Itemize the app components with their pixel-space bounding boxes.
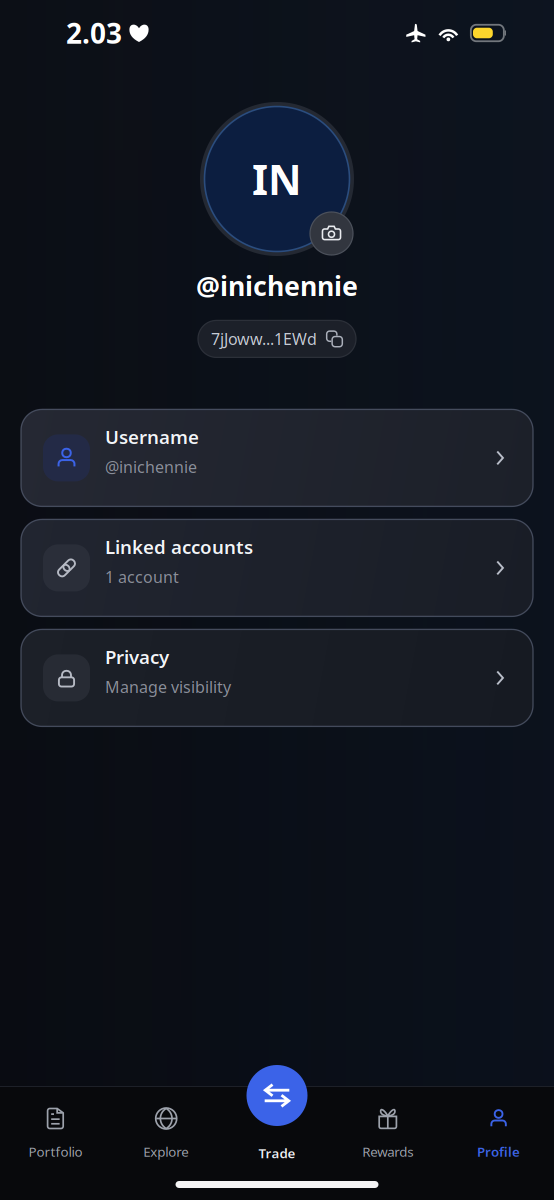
staticText: 7jJoww...1EWd [211, 328, 317, 349]
button[interactable]: Linked accounts [21, 519, 533, 616]
button[interactable]: Privacy [21, 629, 533, 726]
button[interactable]: Profile [443, 1087, 554, 1161]
staticText: 2.03 [66, 14, 122, 52]
staticText: Trade [258, 1144, 295, 1162]
button[interactable]: Copy wallet address 7jJoww...1EWd [198, 320, 356, 357]
staticText: Explore [143, 1143, 189, 1160]
staticText: Linked accounts [105, 534, 253, 559]
staticText: IN [252, 152, 302, 206]
staticText: 1 account [105, 566, 179, 587]
staticText: @inichennie [105, 456, 197, 477]
staticText: Profile [477, 1143, 520, 1160]
staticText: Portfolio [28, 1143, 82, 1160]
staticText: Username [105, 424, 199, 449]
button[interactable]: Change profile photo [310, 212, 353, 255]
button[interactable]: Rewards [332, 1087, 443, 1161]
button[interactable]: Explore [111, 1087, 222, 1161]
button[interactable]: Username [21, 409, 533, 506]
staticText: @inichennie [196, 268, 358, 303]
button[interactable]: Trade [222, 1086, 332, 1163]
staticText: Privacy [105, 644, 169, 669]
button[interactable]: Trade [246, 1065, 307, 1126]
staticText: Manage visibility [105, 676, 231, 697]
staticText: Rewards [362, 1143, 413, 1160]
button[interactable]: Portfolio [0, 1087, 111, 1161]
